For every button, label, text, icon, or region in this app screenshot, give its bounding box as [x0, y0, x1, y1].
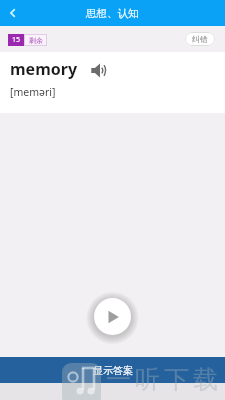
button[interactable]: 纠错	[185, 32, 215, 46]
button[interactable]: 15	[8, 34, 47, 46]
button[interactable]: Play	[94, 298, 131, 335]
staticText: 纠错	[192, 34, 208, 44]
staticText: 一听下载	[104, 364, 220, 395]
staticText: 15	[12, 35, 21, 45]
staticText: 思想、认知	[86, 7, 139, 20]
button[interactable]: Back	[0, 0, 26, 26]
staticText: 显示答案	[93, 364, 133, 377]
button[interactable]: 显示答案	[0, 357, 225, 383]
staticText: [meməri]	[10, 85, 56, 99]
staticText: memory	[10, 58, 78, 80]
button[interactable]: Play pronunciation	[88, 59, 108, 79]
staticText: 剩余	[29, 36, 43, 45]
